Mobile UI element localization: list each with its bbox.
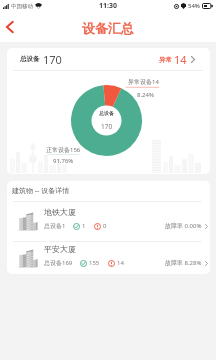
staticText: 总设备 — [99, 110, 114, 116]
staticText: 平安大厦 — [44, 244, 76, 254]
staticText: 170 — [43, 52, 62, 67]
staticText: 建筑物 -- 设备详情 — [12, 186, 70, 196]
staticText: 170 — [101, 122, 113, 131]
staticText: 91.76% — [53, 157, 74, 165]
staticText: 故障率 8.28% — [165, 259, 202, 267]
staticText: 总设备169 — [44, 259, 73, 267]
button[interactable]: Back — [0, 14, 23, 40]
staticText: 14 — [117, 259, 124, 267]
staticText: 中国移动 — [11, 3, 33, 10]
staticText: 11:30 — [99, 1, 117, 11]
staticText: 异常 — [159, 56, 172, 64]
staticText: 14 — [174, 52, 187, 67]
staticText: 故障率 0.00% — [165, 222, 202, 230]
button[interactable]: 平安大厦 — [7, 242, 210, 274]
staticText: 总设备1 — [44, 222, 66, 230]
staticText: 0 — [103, 222, 107, 230]
staticText: 1 — [82, 222, 86, 230]
staticText: 8.24% — [137, 91, 154, 99]
staticText: 54% — [188, 2, 200, 10]
staticText: 155 — [89, 259, 100, 267]
staticText: 总设备 — [20, 55, 40, 63]
staticText: 设备汇总 — [82, 20, 134, 36]
staticText: 异常设备14 — [128, 78, 159, 86]
button[interactable]: 异常 — [159, 52, 195, 67]
staticText: 正常设备156 — [46, 146, 81, 154]
staticText: 地铁大厦 — [44, 207, 76, 217]
button[interactable]: 地铁大厦 — [7, 202, 210, 241]
